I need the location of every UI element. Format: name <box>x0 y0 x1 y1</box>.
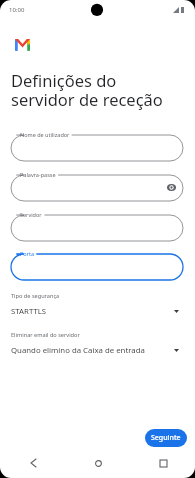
button[interactable]: Tipo de segurança <box>11 292 183 319</box>
staticText: Palavra-passe <box>20 171 56 178</box>
button[interactable]: Porta <box>11 254 183 280</box>
staticText: 10:00 <box>9 6 25 14</box>
staticText: STARTTLS <box>11 306 47 317</box>
staticText: Definições do servidor de receção <box>11 69 163 111</box>
staticText: Nome de utilizador <box>20 131 70 138</box>
button[interactable]: Seguinte <box>145 429 187 447</box>
button[interactable]: Palavra-passe <box>11 175 183 201</box>
button[interactable]: Back <box>22 452 44 474</box>
button[interactable]: Home <box>87 452 109 474</box>
button[interactable]: Nome de utilizador <box>11 135 183 161</box>
staticText: Tipo de segurança <box>11 292 60 300</box>
staticText: Eliminar email do servidor <box>11 331 80 339</box>
staticText: Porta <box>20 250 34 257</box>
staticText: Quando elimino da Caixa de entrada <box>11 345 145 356</box>
button[interactable]: Recents <box>152 452 174 474</box>
button[interactable]: Servidor <box>11 215 183 241</box>
button[interactable]: Eliminar email do servidor <box>11 331 183 358</box>
staticText: Seguinte <box>151 433 181 443</box>
staticText: Servidor <box>20 211 42 218</box>
